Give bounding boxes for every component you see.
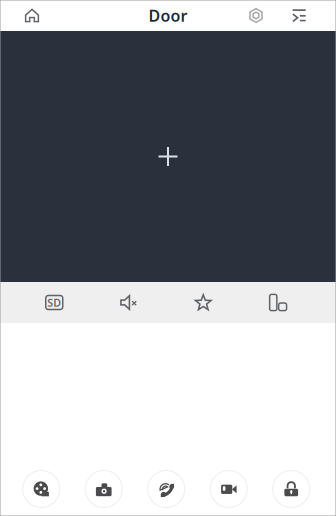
button[interactable]: Mute <box>91 282 166 323</box>
button[interactable]: Record <box>197 462 260 516</box>
button[interactable]: Favourite <box>166 282 240 323</box>
button[interactable]: Add camera <box>146 134 190 178</box>
button[interactable]: Settings <box>234 0 278 31</box>
button[interactable]: Home <box>0 0 64 31</box>
button[interactable]: Snapshot <box>72 462 135 516</box>
button[interactable]: Multi-screen <box>240 282 315 323</box>
staticText: SD <box>47 295 61 310</box>
button[interactable]: Talk <box>135 462 197 516</box>
button[interactable]: Video quality SD <box>17 282 91 323</box>
staticText: Door <box>148 5 187 26</box>
button[interactable]: Playback list <box>278 0 320 31</box>
button[interactable]: Lock <box>260 462 322 516</box>
button[interactable]: Playback <box>10 462 72 516</box>
